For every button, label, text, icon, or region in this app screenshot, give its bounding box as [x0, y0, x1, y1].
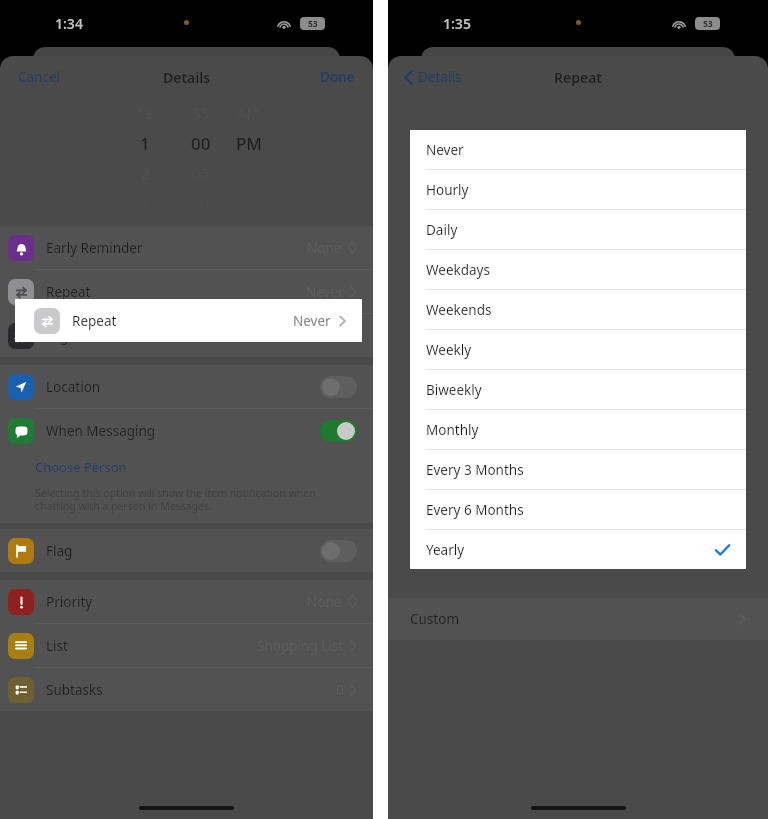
- staticText: None: [307, 593, 342, 611]
- button[interactable]: When Messaging: [0, 409, 373, 452]
- staticText: Details: [163, 68, 211, 87]
- staticText: 1: [140, 132, 150, 155]
- staticText: 1:35: [443, 14, 471, 33]
- staticText: Biweekly: [426, 381, 482, 399]
- staticText: When Messaging: [46, 422, 156, 440]
- staticText: Monthly: [426, 421, 479, 439]
- staticText: Flag: [46, 542, 73, 560]
- button[interactable]: Subtasks: [0, 668, 373, 711]
- button[interactable]: Weekends: [410, 290, 746, 329]
- button[interactable]: Weekly: [410, 330, 746, 369]
- button[interactable]: Off: [320, 376, 357, 398]
- button[interactable]: Every 3 Months: [410, 450, 746, 489]
- staticText: Weekends: [426, 301, 492, 319]
- button[interactable]: Details: [398, 64, 468, 90]
- staticText: Weekly: [426, 341, 472, 359]
- staticText: Tags: [46, 327, 75, 345]
- staticText: Daily: [426, 221, 458, 239]
- button[interactable]: Done: [312, 64, 363, 90]
- button[interactable]: Biweekly: [410, 370, 746, 409]
- button[interactable]: Early Reminder: [0, 226, 373, 269]
- staticText: None: [307, 239, 342, 257]
- staticText: 53: [308, 18, 318, 30]
- staticText: Choose Person: [35, 458, 127, 476]
- staticText: Priority: [46, 593, 93, 611]
- staticText: 00: [191, 132, 211, 155]
- button[interactable]: List: [0, 624, 373, 667]
- button[interactable]: Monthly: [410, 410, 746, 449]
- staticText: Custom: [410, 610, 460, 628]
- staticText: Every 3 Months: [426, 461, 524, 479]
- button[interactable]: Cancel: [10, 64, 69, 90]
- staticText: Selecting this option will show the item…: [35, 486, 349, 513]
- staticText: 0: [336, 681, 344, 699]
- staticText: Location: [46, 378, 101, 396]
- button[interactable]: Priority: [0, 580, 373, 623]
- staticText: Never: [426, 141, 464, 159]
- staticText: Never: [293, 312, 331, 330]
- staticText: List: [46, 637, 68, 655]
- button[interactable]: Every 6 Months: [410, 490, 746, 529]
- button[interactable]: Flag: [0, 529, 373, 572]
- staticText: Subtasks: [46, 681, 103, 699]
- button[interactable]: Choose Person: [35, 454, 127, 480]
- button[interactable]: Never: [410, 130, 746, 169]
- button[interactable]: Repeat: [15, 299, 362, 342]
- button[interactable]: Weekdays: [410, 250, 746, 289]
- button[interactable]: Yearly: [410, 530, 746, 569]
- staticText: Never: [306, 283, 344, 301]
- button[interactable]: Hourly: [410, 170, 746, 209]
- staticText: Details: [418, 68, 462, 86]
- button[interactable]: Custom: [388, 598, 768, 640]
- button[interactable]: On: [320, 420, 357, 442]
- staticText: Repeat: [72, 312, 117, 330]
- staticText: 53: [703, 18, 713, 30]
- staticText: Yearly: [426, 541, 465, 559]
- button[interactable]: Repeat: [0, 270, 373, 313]
- button[interactable]: Location: [0, 365, 373, 408]
- staticText: Repeat: [554, 68, 603, 87]
- button[interactable]: Off: [320, 540, 357, 562]
- staticText: Hourly: [426, 181, 469, 199]
- staticText: 1:34: [55, 14, 83, 33]
- staticText: Shopping List: [257, 637, 344, 655]
- staticText: Done: [320, 68, 355, 86]
- staticText: Repeat: [46, 283, 91, 301]
- button[interactable]: Daily: [410, 210, 746, 249]
- button[interactable]: Tags: [0, 314, 373, 357]
- staticText: PM: [236, 132, 262, 155]
- staticText: Cancel: [18, 68, 61, 86]
- staticText: Weekdays: [426, 261, 490, 279]
- staticText: Every 6 Months: [426, 501, 524, 519]
- staticText: Early Reminder: [46, 239, 143, 257]
